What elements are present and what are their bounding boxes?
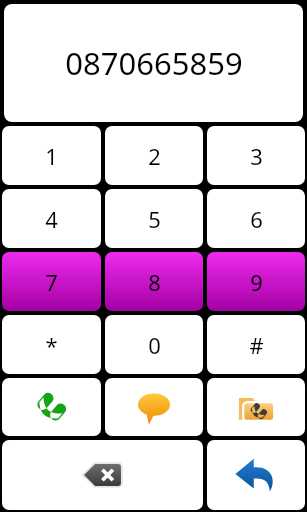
staticText: # <box>249 330 264 360</box>
button[interactable]: 0 <box>105 315 203 374</box>
button[interactable]: 2 <box>105 126 203 185</box>
button[interactable]: 3 <box>207 126 305 185</box>
staticText: 7 <box>45 267 58 297</box>
staticText: 8 <box>148 267 161 297</box>
staticText: 0870665859 <box>65 42 243 84</box>
button[interactable]: # <box>207 315 305 374</box>
button[interactable]: 4 <box>2 189 101 248</box>
staticText: 6 <box>250 204 263 234</box>
staticText: 5 <box>148 204 161 234</box>
staticText: * <box>45 330 58 360</box>
staticText: 1 <box>45 141 58 171</box>
staticText: 3 <box>250 141 263 171</box>
button[interactable]: 6 <box>207 189 305 248</box>
staticText: 9 <box>250 267 263 297</box>
button[interactable]: 1 <box>2 126 101 185</box>
staticText: 0 <box>148 330 161 360</box>
button[interactable]: 8 <box>105 252 203 311</box>
button[interactable]: Call <box>2 378 101 436</box>
staticText: 2 <box>148 141 161 171</box>
button[interactable]: Back <box>207 440 305 510</box>
button[interactable]: 0870665859 <box>4 4 303 122</box>
button[interactable]: Send SMS <box>105 378 203 436</box>
button[interactable]: 5 <box>105 189 203 248</box>
button[interactable]: * <box>2 315 101 374</box>
staticText: 4 <box>45 204 58 234</box>
button[interactable]: 9 <box>207 252 305 311</box>
button[interactable]: 7 <box>2 252 101 311</box>
button[interactable]: Contacts <box>207 378 305 436</box>
button[interactable]: Backspace <box>2 440 203 510</box>
